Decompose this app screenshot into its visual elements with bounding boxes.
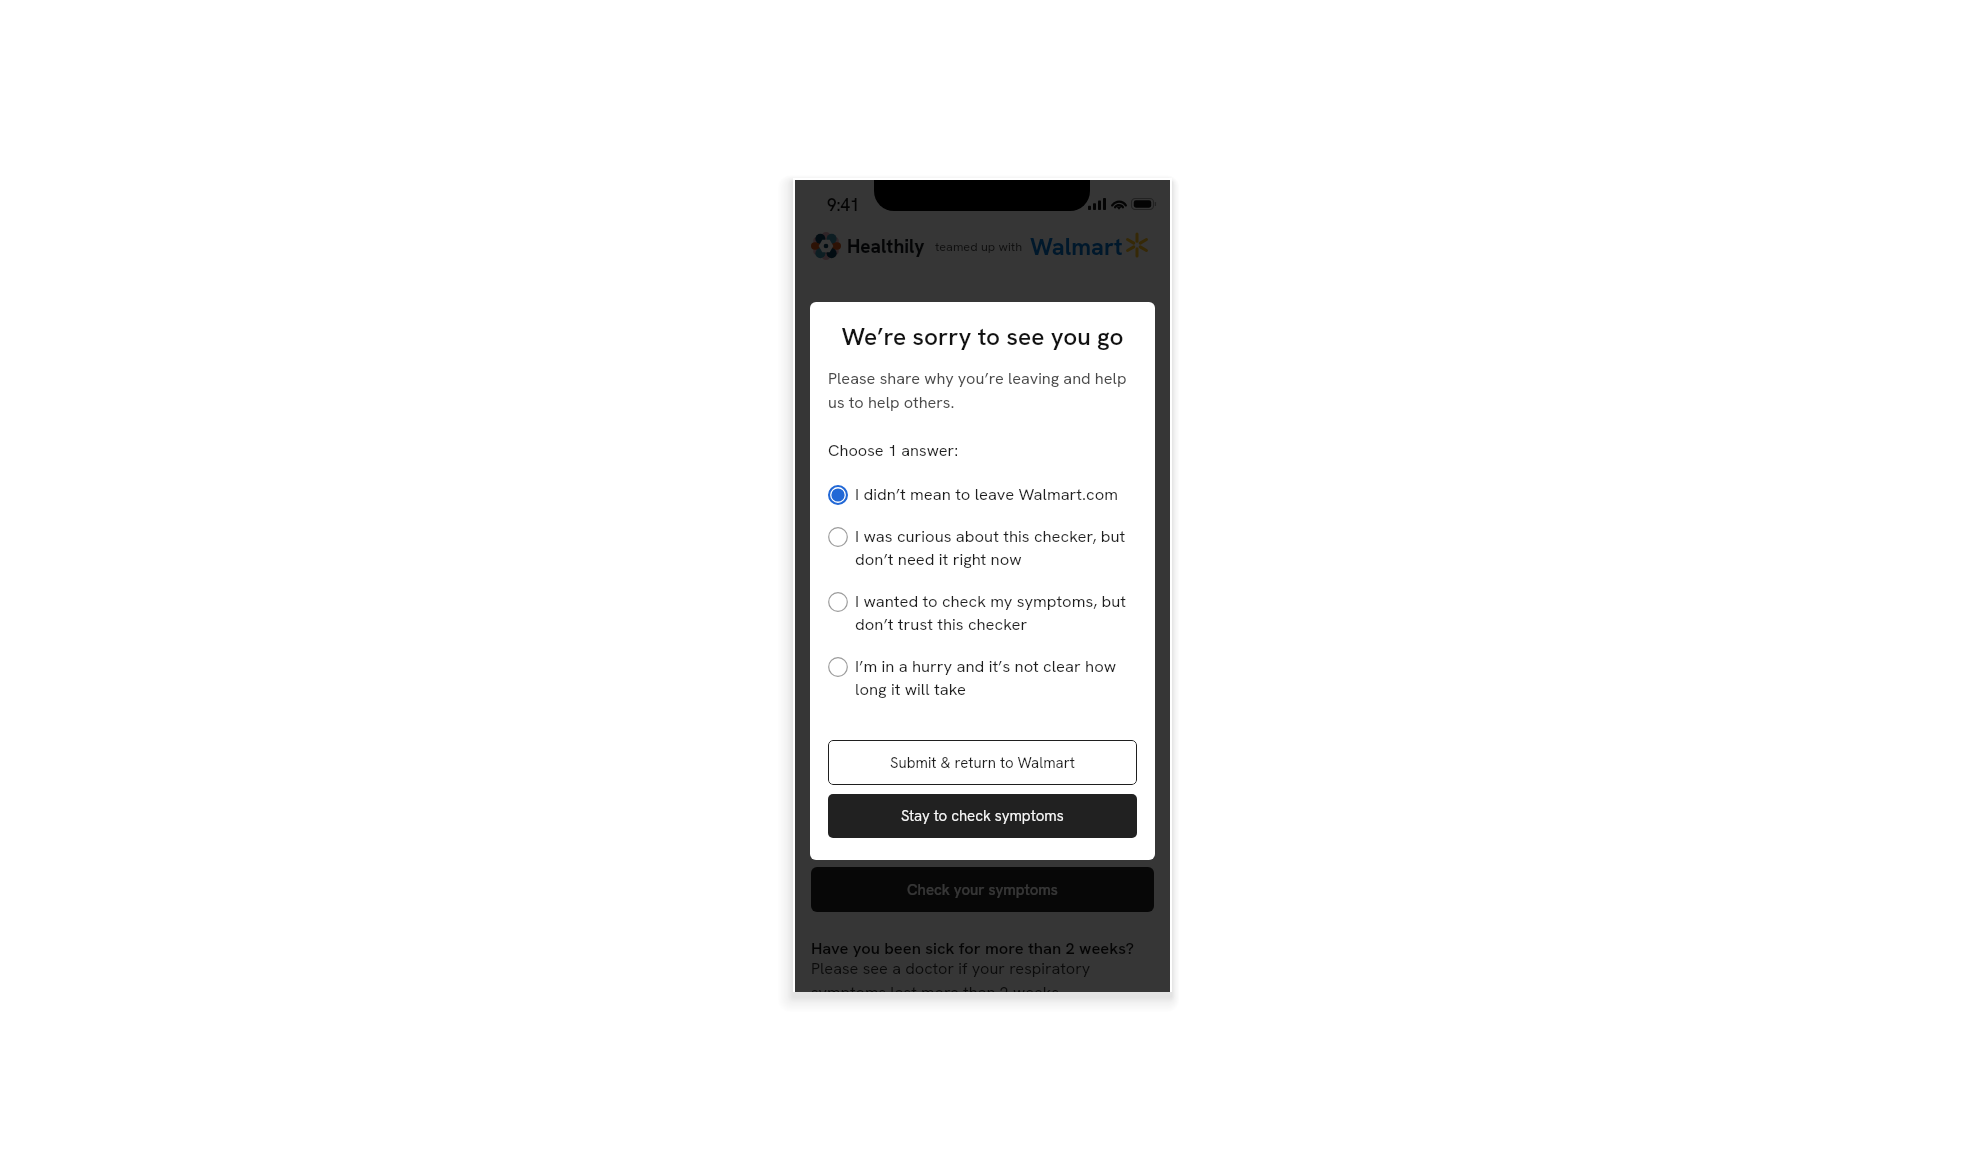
staticText: Walmart (1030, 231, 1123, 262)
staticText: Stay to check symptoms (901, 806, 1064, 826)
staticText: Choose 1 answer: (828, 440, 959, 461)
staticText: I didn’t mean to leave Walmart.com (855, 483, 1118, 505)
button[interactable]: Check your symptoms (811, 867, 1154, 912)
staticText: I’m in a hurry and it’s not clear how lo… (855, 655, 1137, 700)
button[interactable]: I was curious about this checker, but do… (828, 525, 1137, 570)
staticText: Please see a doctor if your respiratory … (811, 958, 1143, 992)
staticText: I was curious about this checker, but do… (855, 525, 1137, 570)
staticText: teamed up with (935, 238, 1023, 254)
staticText: Submit & return to Walmart (890, 753, 1076, 773)
staticText: Please share why you’re leaving and help… (828, 368, 1133, 413)
staticText: Check your symptoms (907, 880, 1058, 900)
staticText: 9:41 (827, 194, 860, 216)
button[interactable]: Healthily home (811, 231, 841, 261)
button[interactable]: Submit & return to Walmart (828, 740, 1137, 785)
button[interactable]: I wanted to check my symptoms, but don’t… (828, 590, 1137, 635)
button[interactable]: I’m in a hurry and it’s not clear how lo… (828, 655, 1137, 700)
staticText: Healthily (847, 234, 925, 259)
staticText: We’re sorry to see you go (810, 321, 1155, 353)
button[interactable]: I didn’t mean to leave Walmart.com (828, 483, 1137, 505)
staticText: I wanted to check my symptoms, but don’t… (855, 590, 1137, 635)
button[interactable]: Stay to check symptoms (828, 794, 1137, 838)
staticText: Have you been sick for more than 2 weeks… (811, 937, 1134, 958)
